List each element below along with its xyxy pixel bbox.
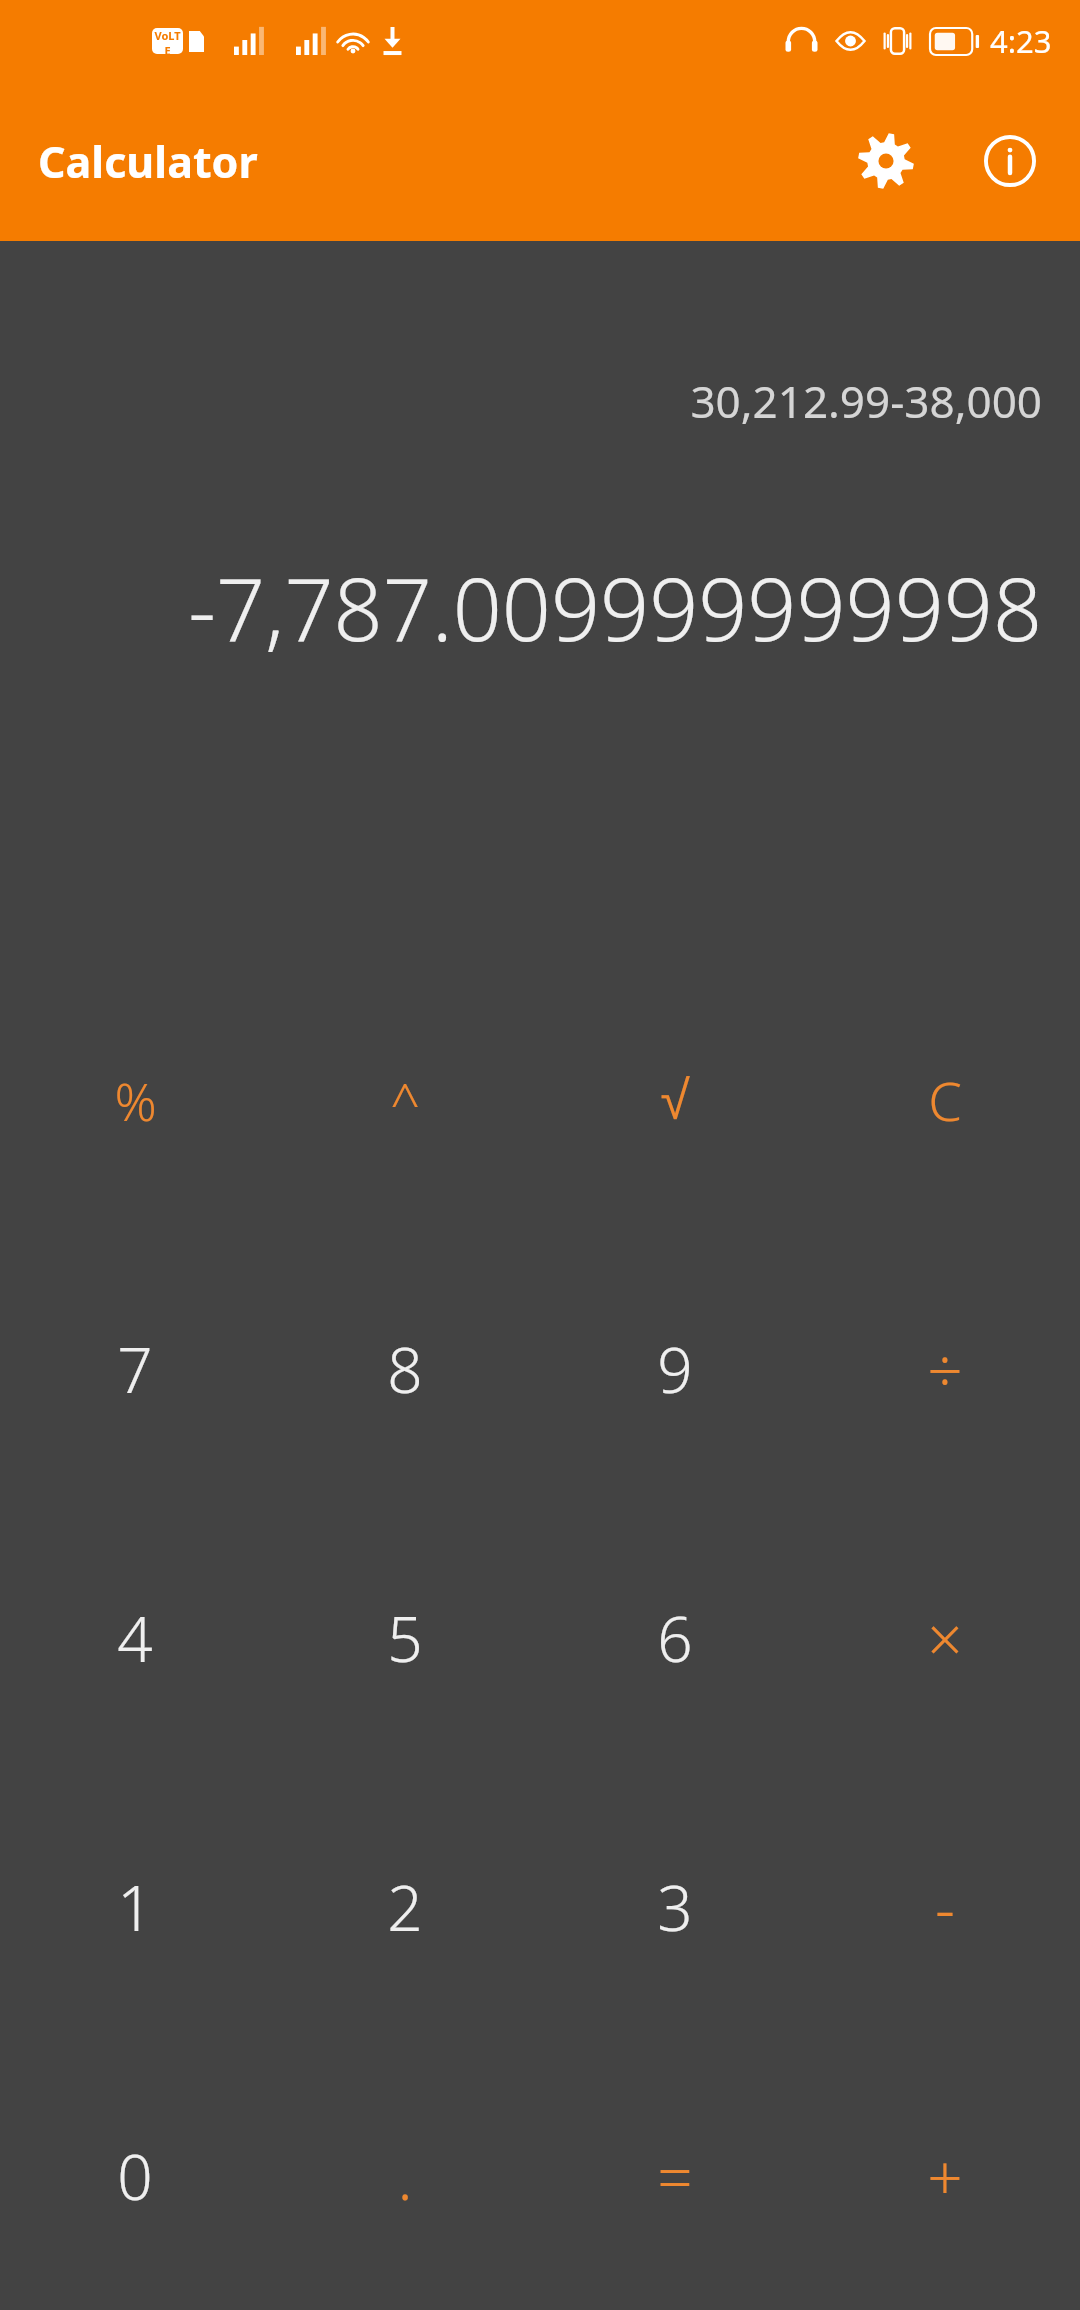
button[interactable]: . <box>270 2041 540 2310</box>
staticText: × <box>927 1596 963 1680</box>
staticText: ÷ <box>927 1327 963 1411</box>
button[interactable]: 9 <box>540 1234 810 1503</box>
button[interactable]: % <box>0 966 270 1234</box>
button[interactable]: × <box>810 1503 1080 1772</box>
staticText: 7 <box>117 1327 153 1411</box>
staticText: 0 <box>117 2134 153 2218</box>
staticText: 6 <box>657 1596 693 1680</box>
staticText: - <box>935 1865 955 1949</box>
staticText: 2 <box>387 1865 423 1949</box>
staticText: 4:23 <box>990 20 1052 62</box>
staticText: 30,212.99-38,000 <box>0 371 1042 431</box>
staticText: . <box>397 2134 413 2218</box>
button[interactable]: 1 <box>0 1772 270 2041</box>
button[interactable]: 2 <box>270 1772 540 2041</box>
staticText: 8 <box>387 1327 423 1411</box>
button[interactable]: = <box>540 2041 810 2310</box>
button[interactable]: 3 <box>540 1772 810 2041</box>
staticText: 4 <box>117 1596 153 1680</box>
button[interactable]: √ <box>540 966 810 1234</box>
button[interactable]: - <box>810 1772 1080 2041</box>
staticText: C <box>928 1063 962 1137</box>
button[interactable]: ÷ <box>810 1234 1080 1503</box>
staticText: 5 <box>387 1596 423 1680</box>
staticText: ^ <box>390 1065 420 1136</box>
staticText: + <box>927 2134 963 2218</box>
staticText: 1 <box>117 1865 153 1949</box>
staticText: 3 <box>657 1865 693 1949</box>
button[interactable]: 8 <box>270 1234 540 1503</box>
staticText: = <box>657 2134 693 2218</box>
button[interactable]: + <box>810 2041 1080 2310</box>
button[interactable]: 7 <box>0 1234 270 1503</box>
button[interactable]: ^ <box>270 966 540 1234</box>
button[interactable]: 5 <box>270 1503 540 1772</box>
button[interactable]: 6 <box>540 1503 810 1772</box>
staticText: √ <box>660 1070 690 1130</box>
staticText: VoLTE <box>152 28 183 54</box>
button[interactable]: Info <box>962 113 1058 209</box>
button[interactable]: 4 <box>0 1503 270 1772</box>
staticText: 9 <box>657 1327 693 1411</box>
staticText: Calculator <box>38 132 258 191</box>
staticText: % <box>114 1065 157 1136</box>
button[interactable]: Settings <box>838 113 934 209</box>
staticText: -7,787.009999999998 <box>0 549 1042 666</box>
button[interactable]: 0 <box>0 2041 270 2310</box>
button[interactable]: C <box>810 966 1080 1234</box>
